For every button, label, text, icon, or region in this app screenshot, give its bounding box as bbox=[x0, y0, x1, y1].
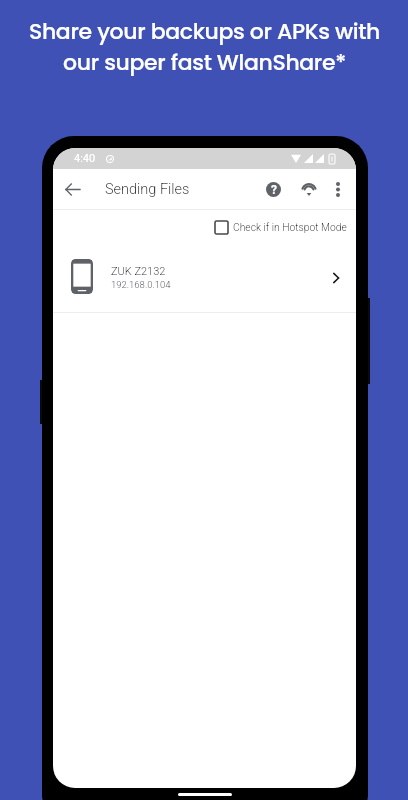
button[interactable]: ZUK Z2132 bbox=[53, 248, 356, 312]
staticText: 4:40 bbox=[74, 152, 96, 165]
staticText: Share your backups or APKs with our supe… bbox=[29, 16, 380, 77]
button[interactable]: Check if in Hotspot Mode bbox=[53, 210, 356, 248]
staticText: ? bbox=[271, 183, 277, 197]
button[interactable]: More options bbox=[325, 176, 351, 202]
staticText: 192.168.0.104 bbox=[111, 279, 171, 290]
staticText: Check if in Hotspot Mode bbox=[233, 221, 347, 233]
button[interactable]: Help bbox=[260, 176, 286, 202]
staticText: Sending Files bbox=[105, 181, 190, 198]
button[interactable]: Wi-Fi bbox=[296, 176, 322, 202]
button[interactable]: Back bbox=[59, 176, 85, 202]
staticText: ZUK Z2132 bbox=[111, 265, 166, 278]
